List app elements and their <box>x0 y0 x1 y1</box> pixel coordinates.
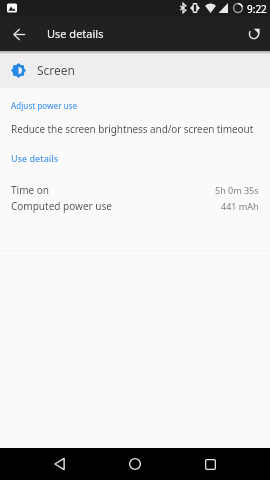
button[interactable]: Recents <box>194 448 226 480</box>
staticText: 9:22 <box>247 2 267 16</box>
staticText: Computed power use <box>11 199 112 213</box>
staticText: Time on <box>11 183 49 197</box>
button[interactable]: Screen <box>0 51 270 88</box>
button[interactable]: Refresh <box>241 21 267 47</box>
button[interactable]: Home <box>119 448 151 480</box>
staticText: Use details <box>11 152 59 164</box>
staticText: Use details <box>47 26 104 41</box>
staticText: 441 mAh <box>221 200 259 212</box>
button[interactable]: Navigate up <box>6 21 32 47</box>
staticText: Adjust power use <box>11 100 78 111</box>
button[interactable]: Computed power use <box>0 198 270 214</box>
staticText: Reduce the screen brightness and/or scre… <box>11 122 254 136</box>
button[interactable]: Back <box>43 448 75 480</box>
button[interactable]: Time on <box>0 182 270 198</box>
staticText: 5h 0m 35s <box>215 184 259 196</box>
staticText: Screen <box>37 62 76 78</box>
